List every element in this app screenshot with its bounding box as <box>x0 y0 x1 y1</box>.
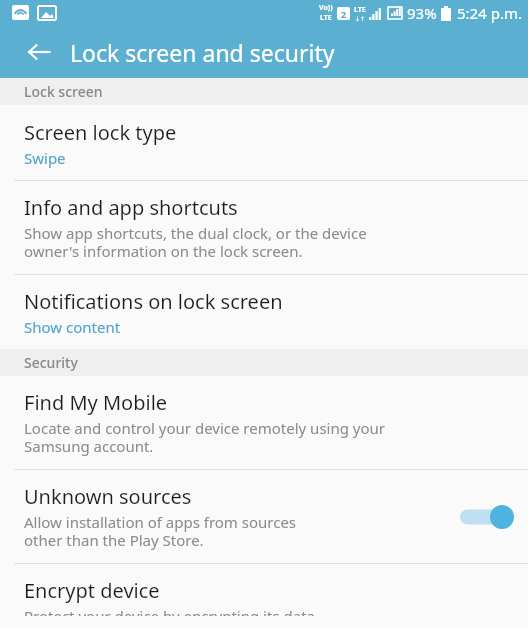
staticText: 93% <box>407 3 437 23</box>
button[interactable]: Notifications on lock screen <box>0 275 528 349</box>
button[interactable]: Screen lock type <box>0 105 528 180</box>
button[interactable]: Find My Mobile <box>0 376 528 469</box>
button[interactable]: Back <box>18 31 60 73</box>
staticText: Lock screen and security <box>70 37 335 68</box>
staticText: Allow installation of apps from sources … <box>24 512 297 551</box>
staticText: Encrypt device <box>24 577 160 604</box>
staticText: Info and app shortcuts <box>24 194 238 221</box>
staticText: Security <box>24 353 78 372</box>
staticText: Protect your device by encrypting its da… <box>24 606 319 616</box>
staticText: 2 <box>341 8 347 20</box>
staticText: Show content <box>24 317 121 337</box>
button[interactable]: Info and app shortcuts <box>0 181 528 274</box>
staticText: Swipe <box>24 148 66 168</box>
staticText: LTE <box>320 13 332 23</box>
staticText: Locate and control your device remotely … <box>24 418 386 457</box>
staticText: ↓↑ <box>355 15 366 22</box>
staticText: Notifications on lock screen <box>24 288 283 315</box>
button[interactable]: Encrypt device <box>0 564 528 628</box>
staticText: Lock screen <box>24 82 103 101</box>
staticText: LTE <box>354 5 366 15</box>
staticText: Vo)) <box>319 3 333 13</box>
staticText: Show app shortcuts, the dual clock, or t… <box>24 223 367 262</box>
button[interactable]: Unknown sources toggle, on <box>460 505 514 529</box>
staticText: Screen lock type <box>24 119 177 146</box>
staticText: Find My Mobile <box>24 389 168 416</box>
staticText: Unknown sources <box>24 483 192 510</box>
button[interactable]: Unknown sources <box>0 470 528 563</box>
staticText: 5:24 p.m. <box>457 3 522 23</box>
